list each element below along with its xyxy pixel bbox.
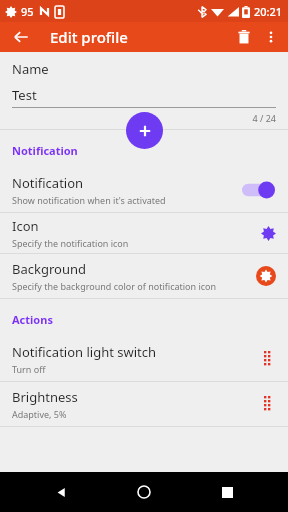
staticText: Brightness — [12, 388, 78, 406]
staticText: 20:21 — [254, 4, 283, 19]
other: Reorder — [260, 349, 276, 369]
staticText: Notification — [12, 174, 84, 192]
button[interactable]: Notification light switch — [0, 337, 288, 381]
staticText: Adaptive, 5% — [12, 408, 67, 420]
button[interactable]: Back — [39, 472, 83, 512]
staticText: 4 / 24 — [12, 112, 276, 124]
staticText: Edit profile — [50, 27, 128, 47]
staticText: Notification light switch — [12, 343, 157, 361]
button[interactable]: Notification toggle — [242, 180, 276, 200]
button[interactable]: Icon — [0, 213, 288, 253]
button[interactable]: Delete — [230, 23, 258, 51]
staticText: Icon — [12, 217, 39, 235]
button[interactable]: Background — [0, 254, 288, 298]
button[interactable]: Brightness — [0, 382, 288, 426]
staticText: Specify the background color of notifica… — [12, 280, 217, 292]
staticText: Show notification when it's activated — [12, 194, 166, 206]
staticText: Turn off — [12, 363, 46, 375]
button[interactable]: Home — [122, 472, 166, 512]
button[interactable]: Add action — [126, 112, 163, 149]
button[interactable]: Name — [0, 52, 288, 129]
staticText: Specify the notification icon — [12, 237, 129, 249]
other: Reorder — [260, 394, 276, 414]
button[interactable]: Notification — [0, 168, 288, 212]
staticText: Notification — [12, 143, 78, 158]
staticText: Name — [12, 60, 49, 78]
staticText: Test — [12, 86, 37, 104]
button[interactable]: Back — [8, 24, 34, 50]
staticText: Background — [12, 260, 86, 278]
staticText: Actions — [12, 312, 53, 327]
staticText: 95 — [21, 4, 34, 19]
button[interactable]: More options — [258, 24, 284, 50]
button[interactable]: Recent apps — [205, 472, 249, 512]
